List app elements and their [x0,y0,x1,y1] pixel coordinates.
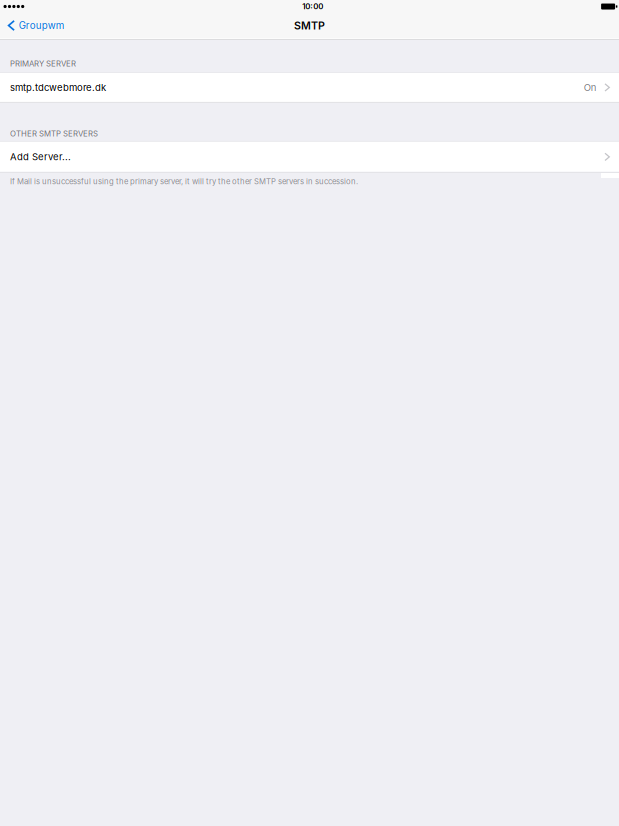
staticText: OTHER SMTP SERVERS [10,129,98,138]
staticText: 10:00 [302,2,323,11]
staticText: smtp.tdcwebmore.dk [10,82,106,93]
button[interactable]: Add Server... [0,142,619,172]
staticText: Add Server... [10,151,71,163]
button[interactable]: Groupwm [0,15,71,35]
staticText: Groupwm [19,20,65,31]
staticText: On [584,82,597,93]
staticText: SMTP [294,19,325,32]
button[interactable]: smtp.tdcwebmore.dk [0,73,619,102]
staticText: If Mail is unsuccessful using the primar… [10,177,358,186]
staticText: PRIMARY SERVER [10,59,76,68]
